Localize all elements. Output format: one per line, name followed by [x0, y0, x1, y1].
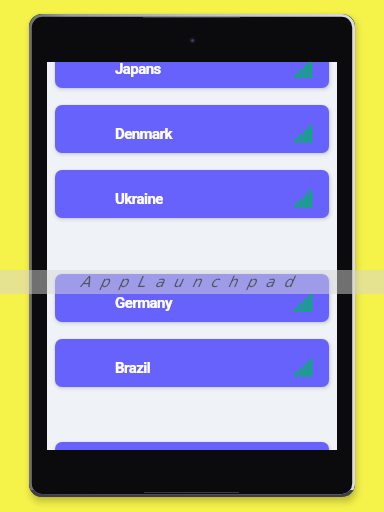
button[interactable]: Germany — [55, 274, 329, 322]
button[interactable]: Japans — [55, 62, 329, 88]
button[interactable]: Denmark — [55, 105, 329, 153]
staticText: Japans — [115, 62, 161, 78]
button[interactable]: Ukraine — [55, 170, 329, 218]
staticText: Germany — [115, 294, 172, 312]
button[interactable]: Brazil — [55, 339, 329, 387]
staticText: Ukraine — [115, 190, 163, 208]
button[interactable]: Canada — [55, 442, 329, 450]
staticText: A p p L a u n c h p a d — [0, 273, 380, 290]
staticText: Denmark — [115, 125, 172, 143]
staticText: Brazil — [115, 359, 151, 377]
